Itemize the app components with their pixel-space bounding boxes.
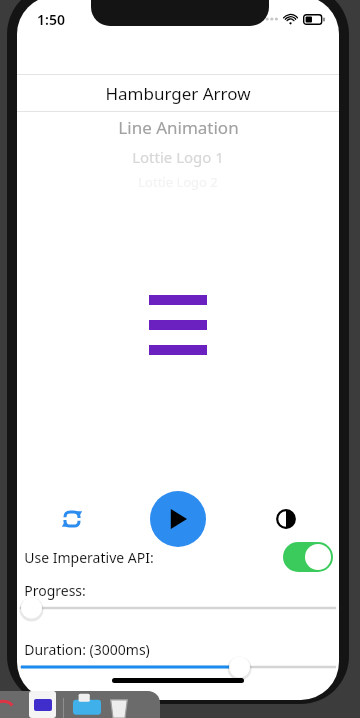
staticText: Hamburger Arrow — [105, 82, 251, 105]
staticText: 1:50 — [37, 10, 65, 28]
staticText: Line Animation — [118, 116, 239, 139]
button[interactable]: Play — [150, 491, 206, 547]
staticText: Lottie Logo 2 — [138, 173, 218, 191]
staticText: Duration: (3000ms) — [24, 640, 150, 659]
button[interactable]: Use Imperative API — [283, 542, 333, 572]
button[interactable]: Loop — [55, 502, 89, 536]
staticText: Progress: — [24, 581, 86, 600]
staticText: Use Imperative API: — [24, 548, 154, 567]
button[interactable]: Contrast — [269, 502, 303, 536]
button[interactable]: Progress — [21, 597, 335, 619]
staticText: Lottie Logo 1 — [132, 147, 224, 167]
button[interactable]: Duration — [21, 656, 335, 678]
